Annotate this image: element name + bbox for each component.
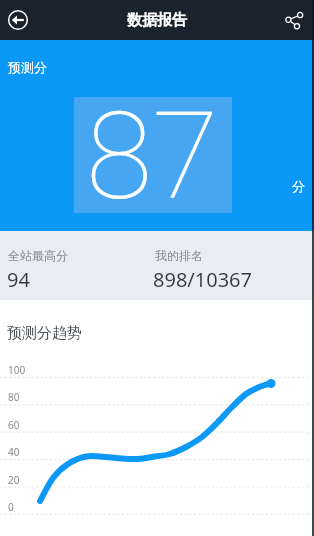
staticText: 预测分趋势 xyxy=(7,324,82,343)
staticText: 全站最高分 xyxy=(8,248,68,263)
staticText: 数据报告 xyxy=(127,11,187,30)
staticText: 80 xyxy=(8,390,20,404)
staticText: 20 xyxy=(8,473,20,487)
staticText: 100 xyxy=(8,363,26,377)
staticText: 94 xyxy=(7,266,30,293)
staticText: 0 xyxy=(8,500,14,514)
staticText: 60 xyxy=(8,418,20,432)
button[interactable] xyxy=(74,97,232,213)
button[interactable] xyxy=(0,0,40,40)
staticText: 40 xyxy=(8,445,20,459)
staticText: 预测分 xyxy=(8,59,47,75)
staticText: 87 xyxy=(86,86,219,228)
staticText: 我的排名 xyxy=(155,248,203,263)
button[interactable] xyxy=(274,0,314,40)
staticText: 898/10367 xyxy=(153,266,252,293)
staticText: 分 xyxy=(292,178,305,194)
